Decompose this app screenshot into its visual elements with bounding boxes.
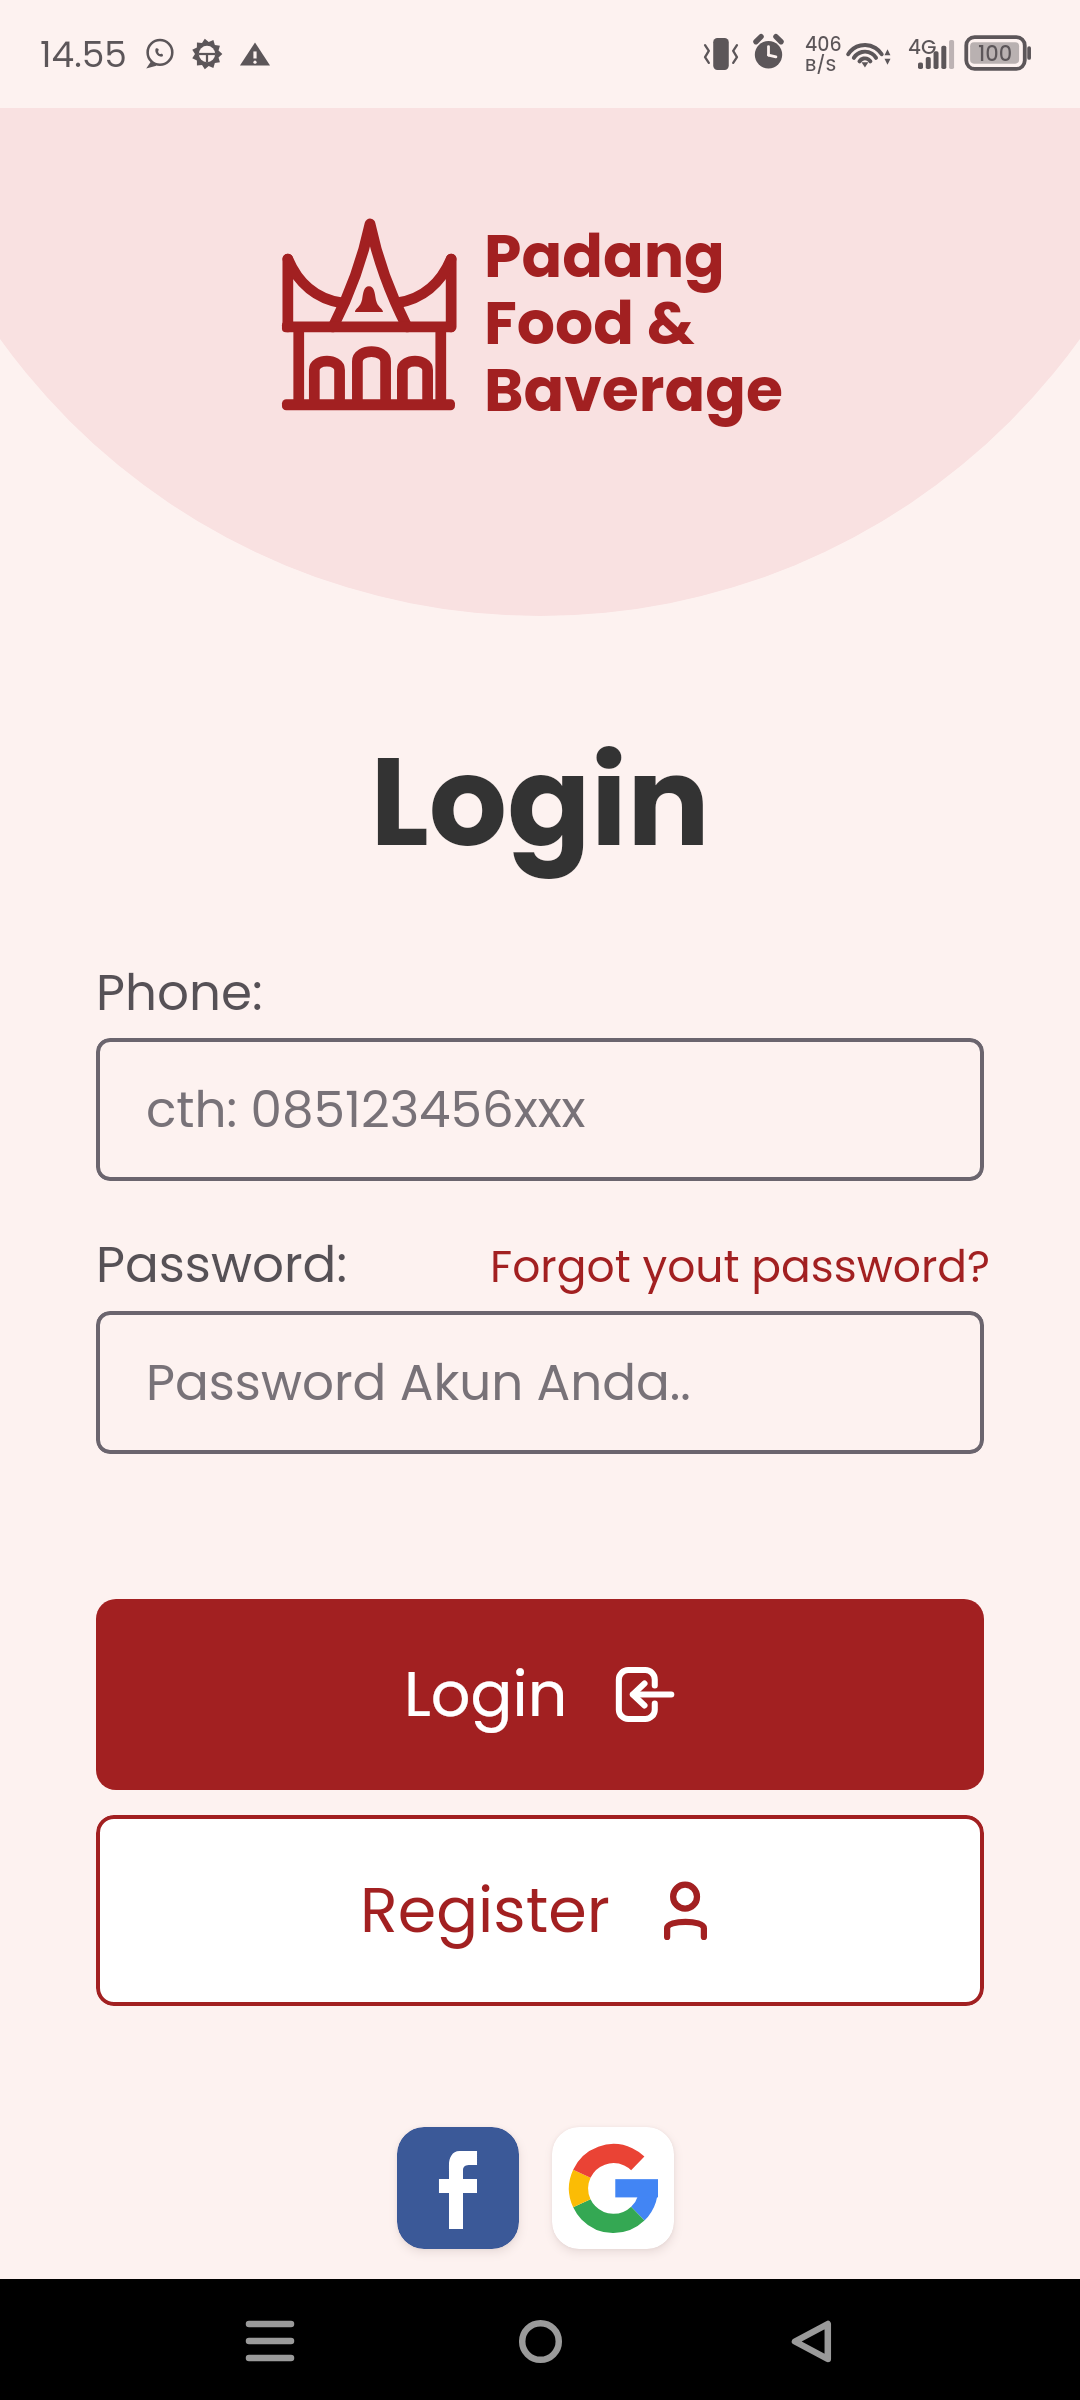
staticText: cth: 085123456xxx: [146, 1075, 586, 1145]
button[interactable]: Sign in with Google: [552, 2127, 674, 2249]
staticText: Login: [0, 716, 1080, 888]
staticText: Padang: [484, 214, 725, 298]
staticText: B/S: [805, 52, 837, 77]
staticText: Login: [404, 1651, 568, 1738]
button[interactable]: Register: [96, 1815, 984, 2006]
staticText: Baverage: [484, 348, 783, 432]
staticText: 14.55: [40, 29, 127, 79]
staticText: 406: [805, 31, 842, 58]
button[interactable]: Back: [765, 2309, 857, 2373]
button[interactable]: Login: [96, 1599, 984, 1790]
staticText: 4G: [908, 33, 937, 61]
staticText: Forgot yout password?: [490, 1236, 991, 1298]
staticText: Food &: [484, 281, 695, 365]
button[interactable]: Password Akun Anda..: [96, 1311, 984, 1454]
staticText: Register: [360, 1867, 610, 1954]
staticText: Password:: [96, 1230, 348, 1300]
staticText: Phone:: [96, 958, 263, 1028]
button[interactable]: cth: 085123456xxx: [96, 1038, 984, 1181]
staticText: Password Akun Anda..: [146, 1348, 691, 1418]
staticText: 100: [978, 39, 1013, 68]
button[interactable]: Forgot yout password?: [490, 1236, 991, 1298]
button[interactable]: Sign in with Facebook: [397, 2127, 519, 2249]
button[interactable]: Home: [494, 2309, 586, 2373]
button[interactable]: Recents: [224, 2309, 316, 2373]
